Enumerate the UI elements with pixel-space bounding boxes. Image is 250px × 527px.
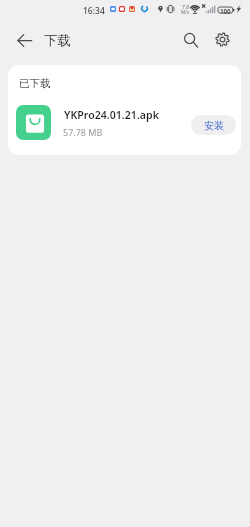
button[interactable]: 安装 xyxy=(191,115,236,135)
button[interactable]: Back xyxy=(10,26,39,55)
staticText: 57.78 MB xyxy=(63,126,103,138)
staticText: YKPro24.01.21.apk xyxy=(64,108,159,122)
staticText: 100 xyxy=(220,7,231,15)
button[interactable]: Settings xyxy=(208,25,237,54)
button[interactable]: Search xyxy=(176,25,205,54)
staticText: M/s xyxy=(181,9,189,15)
staticText: 下载 xyxy=(44,32,71,49)
staticText: 16:34 xyxy=(83,5,105,17)
button[interactable]: YKPro24.01.21.apk xyxy=(8,98,241,143)
staticText: 安装 xyxy=(204,119,224,132)
staticText: 7.8 xyxy=(182,4,190,11)
staticText: 已下载 xyxy=(19,77,51,90)
